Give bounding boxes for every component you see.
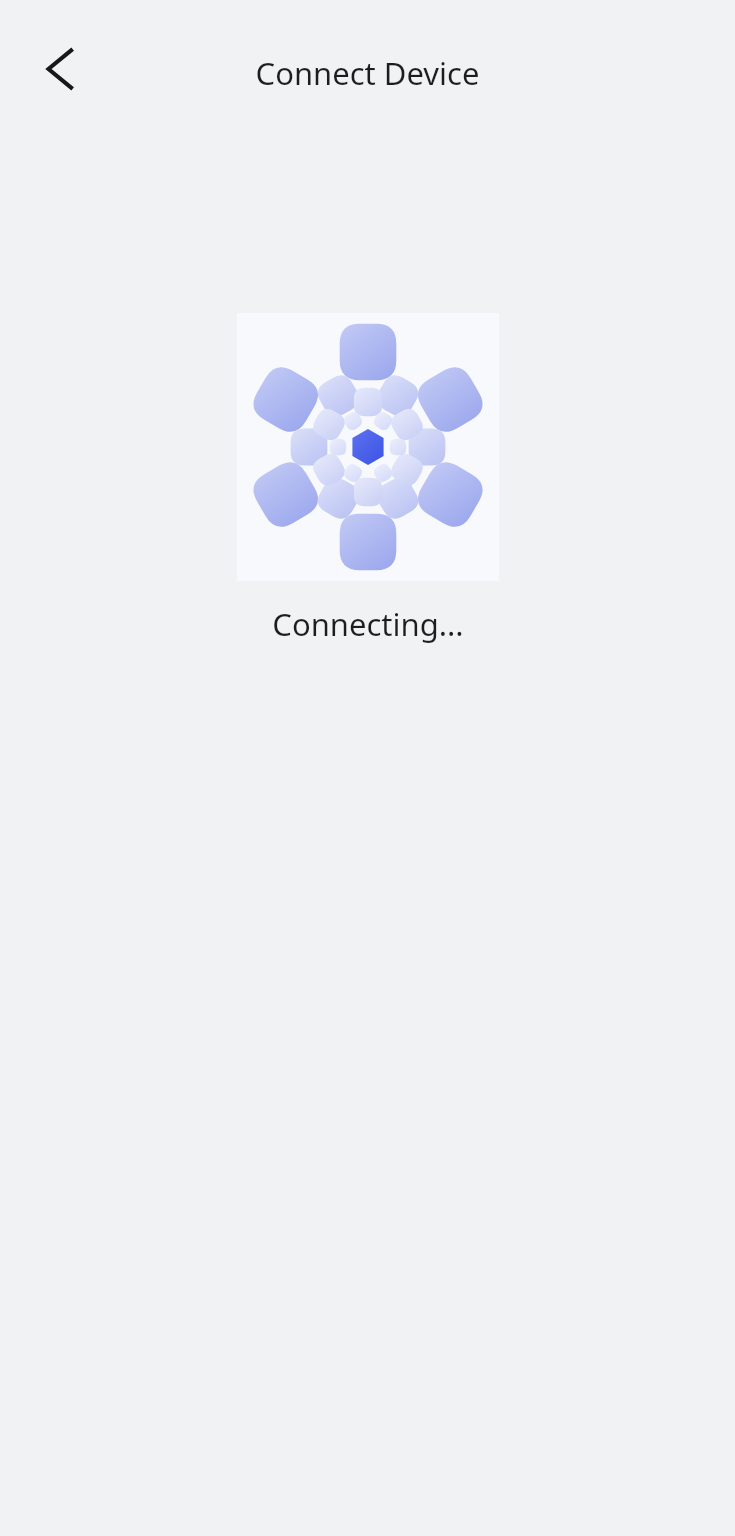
staticText: Connect Device (0, 52, 735, 94)
staticText: Connecting... (272, 603, 464, 645)
button[interactable]: Back (20, 30, 98, 108)
